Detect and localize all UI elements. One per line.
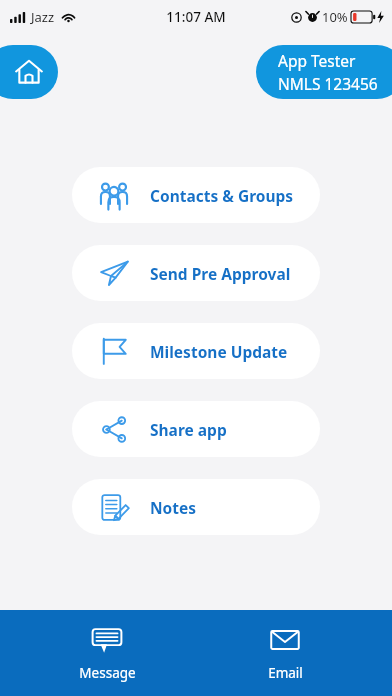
staticText: NMLS 123456 bbox=[278, 73, 378, 94]
button[interactable]: Share app bbox=[72, 401, 320, 457]
button[interactable]: Message bbox=[37, 610, 177, 696]
button[interactable]: Email bbox=[215, 610, 355, 696]
staticText: Contacts & Groups bbox=[150, 185, 294, 206]
button[interactable]: Contacts & Groups bbox=[72, 167, 320, 223]
button[interactable]: Home bbox=[0, 45, 58, 99]
staticText: 10% bbox=[322, 8, 348, 26]
button[interactable]: App Tester bbox=[256, 45, 392, 99]
staticText: Notes bbox=[150, 497, 197, 518]
staticText: Milestone Update bbox=[150, 341, 288, 362]
button[interactable]: Milestone Update bbox=[72, 323, 320, 379]
button[interactable]: Send Pre Approval bbox=[72, 245, 320, 301]
staticText: App Tester bbox=[278, 50, 356, 71]
staticText: Jazz bbox=[31, 8, 55, 26]
staticText: Email bbox=[268, 664, 303, 682]
staticText: Share app bbox=[150, 419, 227, 440]
staticText: 11:07 AM bbox=[166, 8, 226, 26]
button[interactable]: Notes bbox=[72, 479, 320, 535]
staticText: Message bbox=[79, 664, 136, 682]
staticText: Send Pre Approval bbox=[150, 263, 291, 284]
